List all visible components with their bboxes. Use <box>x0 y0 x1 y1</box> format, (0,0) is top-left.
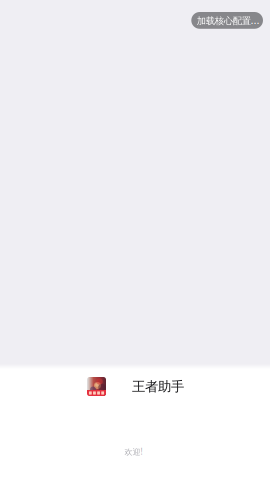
staticText: 加载核心配置... <box>197 14 260 27</box>
staticText: 王者助手 <box>132 378 184 395</box>
button[interactable]: 王者助手 <box>0 369 270 396</box>
staticText: 欢迎! <box>124 446 142 457</box>
